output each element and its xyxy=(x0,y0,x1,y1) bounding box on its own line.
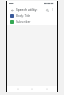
staticText: Speech utility: autocomplete xyxy=(16,8,44,12)
button[interactable]: Subscriber xyxy=(7,19,57,25)
button[interactable]: Back xyxy=(14,86,22,92)
button[interactable]: Body: Title xyxy=(7,13,57,19)
button[interactable]: Recents xyxy=(43,86,51,92)
button[interactable]: Navigate up xyxy=(9,7,15,13)
staticText: Subscriber xyxy=(16,20,54,24)
button[interactable]: Search xyxy=(44,7,50,13)
button[interactable]: Home xyxy=(28,86,36,92)
button[interactable]: More options xyxy=(50,7,55,12)
staticText: Body: Title xyxy=(16,14,54,18)
